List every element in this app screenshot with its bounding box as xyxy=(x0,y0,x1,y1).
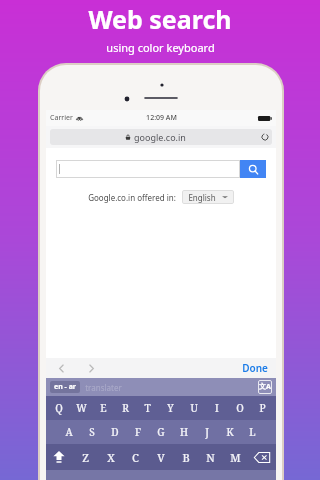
staticText: en - ar xyxy=(54,382,76,392)
staticText: google.co.in xyxy=(134,131,186,143)
staticText: O xyxy=(236,401,244,415)
staticText: R xyxy=(122,401,129,415)
staticText: Q xyxy=(55,401,63,415)
button[interactable]: P xyxy=(251,396,274,420)
button[interactable]: F xyxy=(126,420,149,444)
button[interactable]: Translate xyxy=(258,380,272,394)
button[interactable]: N xyxy=(198,444,223,470)
staticText: K xyxy=(226,425,234,439)
button[interactable]: L xyxy=(241,420,264,444)
staticText: 文A xyxy=(259,382,271,392)
staticText: U xyxy=(190,401,198,415)
staticText: G xyxy=(157,425,165,439)
staticText: D xyxy=(111,425,119,439)
staticText: C xyxy=(132,450,139,465)
button[interactable]: Q xyxy=(48,396,70,420)
staticText: translater xyxy=(85,382,122,393)
button[interactable]: U xyxy=(182,396,205,420)
button[interactable]: google.co.in xyxy=(50,129,272,145)
button[interactable]: W xyxy=(70,396,92,420)
button[interactable]: J xyxy=(195,420,218,444)
staticText: Carrier xyxy=(50,113,73,123)
button[interactable]: V xyxy=(148,444,173,470)
staticText: X xyxy=(107,450,115,465)
button[interactable]: Z xyxy=(72,444,98,470)
button[interactable]: Backspace xyxy=(248,444,276,470)
button[interactable]: I xyxy=(205,396,228,420)
button[interactable]: E xyxy=(92,396,114,420)
button[interactable]: H xyxy=(172,420,195,444)
button[interactable]: B xyxy=(173,444,198,470)
button[interactable]: T xyxy=(136,396,159,420)
staticText: E xyxy=(100,401,107,415)
staticText: Google.co.in offered in: xyxy=(88,192,176,203)
button[interactable]: en - ar xyxy=(54,381,76,393)
button[interactable]: R xyxy=(114,396,136,420)
staticText: A xyxy=(65,425,73,439)
staticText: I xyxy=(215,401,219,415)
staticText: B xyxy=(182,450,190,465)
staticText: 12:09 AM xyxy=(146,113,177,123)
staticText: L xyxy=(249,425,256,439)
staticText: using color keyboard xyxy=(106,40,215,55)
button[interactable]: Forward xyxy=(84,361,98,375)
staticText: English xyxy=(188,192,216,203)
button[interactable]: Shift xyxy=(46,444,72,470)
staticText: T xyxy=(144,401,151,415)
button[interactable]: Search xyxy=(240,160,266,178)
button[interactable]: Back xyxy=(54,361,68,375)
button[interactable]: S xyxy=(80,420,103,444)
button[interactable]: English xyxy=(188,190,228,204)
staticText: Done xyxy=(242,361,268,375)
staticText: F xyxy=(135,425,141,439)
staticText: N xyxy=(206,450,215,465)
button[interactable]: C xyxy=(123,444,148,470)
staticText: J xyxy=(205,425,209,439)
button[interactable]: O xyxy=(228,396,251,420)
staticText: Z xyxy=(82,450,89,465)
staticText: Y xyxy=(167,401,174,415)
button[interactable]: M xyxy=(223,444,248,470)
button[interactable]: K xyxy=(218,420,241,444)
button[interactable]: X xyxy=(98,444,123,470)
button[interactable] xyxy=(56,160,240,178)
button[interactable]: G xyxy=(149,420,172,444)
staticText: S xyxy=(89,425,95,439)
staticText: H xyxy=(180,425,188,439)
staticText: M xyxy=(230,450,241,465)
button[interactable]: D xyxy=(103,420,126,444)
staticText: P xyxy=(259,401,266,415)
button[interactable]: A xyxy=(58,420,80,444)
staticText: W xyxy=(76,401,87,415)
button[interactable]: Y xyxy=(159,396,182,420)
staticText: V xyxy=(157,450,165,465)
button[interactable]: Done xyxy=(242,361,268,375)
staticText: Web search xyxy=(88,2,232,36)
